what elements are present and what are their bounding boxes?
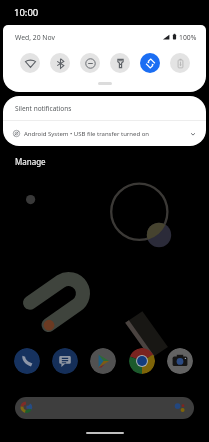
button[interactable]: Messages	[52, 348, 78, 374]
button[interactable]: Flashlight	[105, 53, 135, 73]
button[interactable]: Battery saver	[165, 53, 195, 73]
staticText: Silent notifications	[15, 104, 72, 113]
staticText: 100%	[179, 33, 197, 42]
button[interactable]: Silent notifications	[3, 96, 206, 120]
button[interactable]: Bluetooth	[45, 53, 75, 73]
staticText: Android System • USB file transfer turne…	[24, 130, 150, 138]
button[interactable]: Phone	[14, 348, 40, 374]
button[interactable]: Chrome	[129, 348, 155, 374]
staticText: Manage	[15, 156, 46, 167]
staticText: 10:00	[14, 6, 39, 19]
button[interactable]: Wi‑Fi	[15, 53, 45, 73]
button[interactable]: Manage	[3, 155, 46, 167]
button[interactable]: Camera	[167, 348, 193, 374]
button[interactable]: Auto rotate	[135, 53, 165, 73]
button[interactable]: Play Store	[90, 348, 116, 374]
button[interactable]: Search	[15, 397, 194, 419]
button[interactable]: Do not disturb	[75, 53, 105, 73]
staticText: Wed, 20 Nov	[15, 33, 55, 42]
button[interactable]: Android System • USB file transfer turne…	[3, 121, 206, 146]
